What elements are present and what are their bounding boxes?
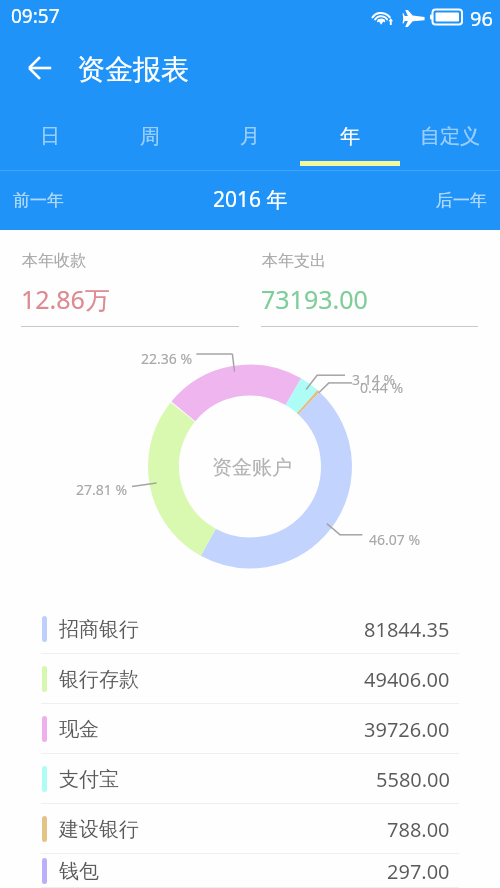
staticText: 资金账户: [212, 455, 292, 480]
staticText: 96: [470, 5, 493, 32]
staticText: 日: [40, 124, 60, 149]
button[interactable]: 招商银行: [0, 604, 500, 654]
other: Battery: [430, 8, 464, 26]
staticText: 46.07 %: [369, 530, 421, 549]
button[interactable]: 建设银行: [0, 804, 500, 854]
staticText: 3.14 %: [352, 370, 396, 389]
staticText: 09:57: [11, 3, 60, 29]
button[interactable]: 银行存款: [0, 654, 500, 704]
button[interactable]: 现金: [0, 704, 500, 754]
staticText: 本年支出: [262, 251, 326, 271]
staticText: 现金: [59, 717, 99, 742]
button[interactable]: 支付宝: [0, 754, 500, 804]
staticText: 招商银行: [59, 617, 139, 642]
button[interactable]: 周: [100, 104, 200, 170]
button[interactable]: 年: [300, 104, 400, 170]
button[interactable]: 自定义: [400, 104, 500, 170]
staticText: 5580.00: [376, 766, 450, 793]
staticText: 自定义: [420, 124, 480, 149]
other: Wi-Fi: [371, 8, 394, 26]
staticText: 22.36 %: [141, 349, 193, 368]
button[interactable]: 本年支出: [261, 230, 478, 334]
staticText: 银行存款: [59, 667, 139, 692]
button[interactable]: 日: [0, 104, 100, 170]
staticText: 297.00: [387, 858, 450, 885]
staticText: 2016 年: [213, 185, 288, 214]
button[interactable]: Back: [18, 46, 62, 90]
staticText: 资金报表: [77, 52, 189, 87]
staticText: 前一年: [13, 190, 64, 211]
button[interactable]: 前一年: [0, 182, 72, 219]
staticText: 后一年: [436, 190, 487, 211]
button[interactable]: 月: [200, 104, 300, 170]
staticText: 49406.00: [364, 666, 450, 693]
staticText: 年: [340, 124, 360, 149]
staticText: 39726.00: [364, 716, 450, 743]
button[interactable]: 后一年: [428, 182, 500, 219]
staticText: 73193.00: [261, 282, 368, 316]
other: Airplane mode: [403, 8, 425, 27]
staticText: 788.00: [387, 816, 450, 843]
staticText: 本年收款: [22, 251, 86, 271]
staticText: 支付宝: [59, 767, 119, 792]
staticText: 钱包: [59, 859, 99, 884]
button[interactable]: 本年收款: [21, 230, 239, 334]
staticText: 27.81 %: [76, 480, 128, 499]
button[interactable]: 钱包: [0, 854, 500, 888]
staticText: 12.86万: [21, 282, 110, 316]
staticText: 月: [240, 124, 260, 149]
staticText: 周: [140, 124, 160, 149]
staticText: 81844.35: [364, 616, 450, 643]
staticText: 0.44 %: [360, 378, 404, 397]
staticText: 建设银行: [59, 817, 139, 842]
